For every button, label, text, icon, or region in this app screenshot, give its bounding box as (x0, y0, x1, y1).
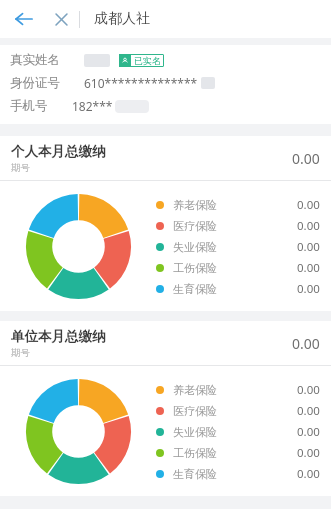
staticText: 0.00 (297, 403, 320, 419)
staticText: 工伤保险 (173, 446, 217, 460)
staticText: 身份证号 (10, 75, 60, 91)
button[interactable]: Close (46, 4, 76, 34)
staticText: 失业保险 (173, 425, 217, 439)
staticText: 期号 (11, 162, 30, 174)
button[interactable]: 医疗保险 (156, 400, 320, 421)
staticText: 0.00 (297, 218, 320, 234)
staticText: 真实姓名 (10, 52, 60, 68)
button[interactable]: 单位本月总缴纳 (0, 321, 331, 365)
staticText: 0.00 (297, 281, 320, 297)
staticText: 工伤保险 (173, 261, 217, 275)
staticText: 已实名 (134, 55, 161, 66)
button[interactable]: 工伤保险 (156, 257, 320, 278)
staticText: 0.00 (292, 149, 320, 168)
button[interactable]: 生育保险 (156, 278, 320, 299)
staticText: 医疗保险 (173, 404, 217, 418)
staticText: 0.00 (297, 382, 320, 398)
staticText: 182*** (72, 98, 113, 114)
button[interactable]: 失业保险 (156, 236, 320, 257)
staticText: 生育保险 (173, 467, 217, 481)
staticText: 成都人社 (94, 10, 150, 28)
button[interactable]: 失业保险 (156, 421, 320, 442)
button[interactable]: 养老保险 (156, 194, 320, 215)
staticText: 0.00 (297, 197, 320, 213)
staticText: 0.00 (297, 239, 320, 255)
staticText: 期号 (11, 347, 30, 359)
button[interactable]: 养老保险 (156, 379, 320, 400)
staticText: 失业保险 (173, 240, 217, 254)
staticText: 0.00 (297, 424, 320, 440)
staticText: 单位本月总缴纳 (11, 328, 106, 345)
button[interactable]: 已实名 (119, 54, 164, 67)
button[interactable]: 工伤保险 (156, 442, 320, 463)
staticText: 610************** (84, 75, 198, 91)
staticText: 养老保险 (173, 198, 217, 212)
button[interactable]: 医疗保险 (156, 215, 320, 236)
button[interactable]: 生育保险 (156, 463, 320, 484)
staticText: 0.00 (297, 466, 320, 482)
staticText: 养老保险 (173, 383, 217, 397)
staticText: 0.00 (297, 260, 320, 276)
staticText: 0.00 (297, 445, 320, 461)
staticText: 个人本月总缴纳 (11, 143, 106, 160)
button[interactable]: Back (8, 3, 40, 35)
staticText: 手机号 (10, 98, 48, 114)
staticText: 生育保险 (173, 282, 217, 296)
button[interactable]: 个人本月总缴纳 (0, 136, 331, 180)
staticText: 0.00 (292, 334, 320, 353)
staticText: 医疗保险 (173, 219, 217, 233)
